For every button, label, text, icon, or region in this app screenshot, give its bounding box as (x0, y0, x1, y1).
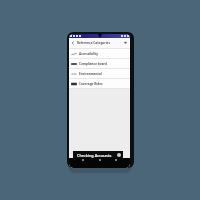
staticText: Accessibility (79, 52, 99, 56)
button[interactable]: Favorite (123, 40, 128, 45)
staticText: Reference Categories (77, 41, 110, 45)
staticText: Coverage Rides (79, 82, 103, 86)
button[interactable]: Environmental (69, 69, 130, 79)
staticText: Compliance board (79, 62, 107, 66)
staticText: Environmental (79, 72, 102, 76)
button[interactable]: Coverage Rides (69, 79, 130, 89)
button[interactable]: Compliance board (69, 59, 130, 69)
button[interactable]: Accessibility (69, 49, 130, 59)
staticText: Checking Accounts (77, 153, 112, 158)
button[interactable]: Back (70, 40, 76, 46)
button[interactable]: Checking Accounts (73, 151, 123, 159)
